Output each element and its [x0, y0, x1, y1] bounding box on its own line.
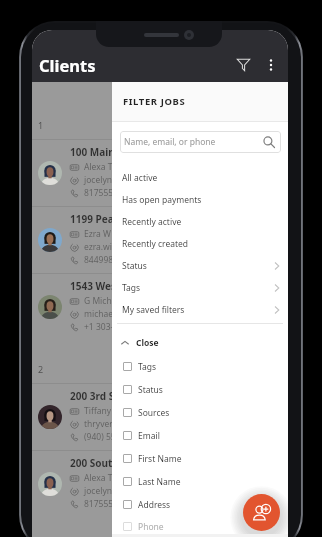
button[interactable]: Filter — [231, 52, 256, 77]
staticText: (940) 55 — [84, 431, 116, 443]
staticText: My saved filters — [122, 304, 185, 316]
staticText: Alexa T — [84, 472, 113, 484]
staticText: Last Name — [138, 476, 181, 488]
staticText: 2 — [38, 363, 44, 375]
staticText: 844998 — [84, 254, 114, 266]
staticText: Status — [138, 384, 163, 396]
staticText: G Micha — [84, 295, 117, 307]
button[interactable]: Email — [112, 424, 288, 447]
staticText: Email — [138, 430, 160, 442]
button[interactable]: Has open payments — [112, 189, 288, 211]
button[interactable]: Phone — [112, 516, 288, 537]
staticText: Name, email, or phone — [124, 136, 216, 148]
staticText: 100 Main — [70, 145, 115, 159]
staticText: 200 South — [70, 456, 119, 470]
staticText: Recently active — [122, 216, 182, 228]
staticText: 817555 — [84, 498, 114, 510]
staticText: Phone — [138, 521, 164, 533]
button[interactable]: Sources — [112, 401, 288, 424]
staticText: 817555 — [84, 187, 114, 199]
staticText: thryver — [84, 418, 113, 430]
button[interactable]: All active — [112, 167, 288, 189]
staticText: Address — [138, 499, 171, 511]
staticText: +1 303- — [84, 321, 114, 333]
staticText: Close — [136, 337, 159, 349]
staticText: ezra.wi — [84, 241, 112, 253]
staticText: 1 — [38, 119, 44, 131]
staticText: michae — [84, 308, 114, 320]
staticText: Ezra W — [84, 228, 111, 240]
staticText: Tags — [122, 282, 141, 294]
button[interactable]: Status — [112, 378, 288, 401]
button[interactable]: Last Name — [112, 470, 288, 493]
staticText: Recently created — [122, 238, 189, 250]
button[interactable]: Recently active — [112, 211, 288, 233]
button[interactable]: Name, email, or phone — [120, 131, 281, 153]
staticText: Sources — [138, 407, 170, 419]
button[interactable]: Recently created — [112, 233, 288, 255]
staticText: Clients — [39, 54, 96, 76]
staticText: First Name — [138, 453, 182, 465]
button[interactable]: My saved filters — [112, 299, 288, 321]
staticText: Has open payments — [122, 194, 202, 206]
button[interactable]: First Name — [112, 447, 288, 470]
staticText: 1543 Wes — [70, 279, 116, 293]
button[interactable]: Address — [112, 493, 288, 516]
button[interactable]: More options — [258, 52, 283, 77]
staticText: Alexa T — [84, 161, 113, 173]
button[interactable]: Status — [112, 255, 288, 277]
button[interactable]: Close — [112, 331, 288, 355]
button[interactable]: Tags — [112, 277, 288, 299]
staticText: jocelyn — [84, 174, 112, 186]
staticText: jocelyn — [84, 485, 112, 497]
staticText: Tiffany — [84, 405, 112, 417]
button[interactable]: Tags — [112, 355, 288, 378]
staticText: 1199 Pear — [70, 212, 119, 226]
staticText: 200 3rd St — [70, 389, 119, 403]
staticText: Status — [122, 260, 147, 272]
staticText: FILTER JOBS — [123, 95, 186, 108]
staticText: All active — [122, 172, 158, 184]
staticText: Tags — [138, 361, 157, 373]
button[interactable]: Add client — [243, 494, 280, 531]
